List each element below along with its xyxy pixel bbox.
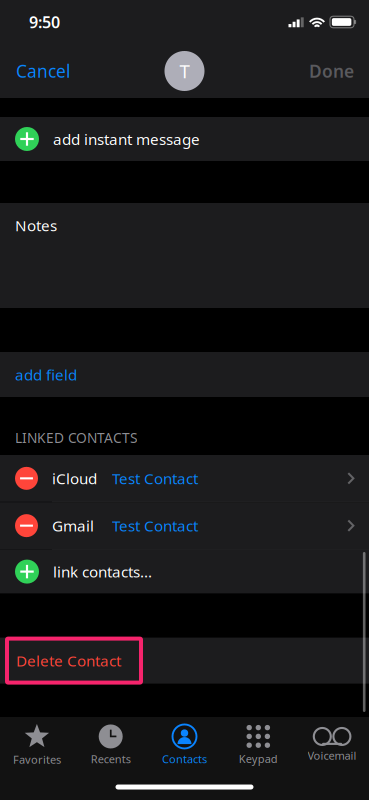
staticText: Notes <box>15 215 57 236</box>
staticText: add field <box>15 364 77 385</box>
staticText: Recents <box>91 751 131 767</box>
button[interactable]: Recents <box>74 717 148 774</box>
button[interactable]: Voicemail <box>295 717 369 774</box>
button[interactable]: add field <box>0 352 369 397</box>
staticText: add instant message <box>53 129 200 149</box>
staticText: 9:50 <box>29 11 60 33</box>
staticText: iCloud <box>52 468 97 489</box>
staticText: Favorites <box>13 752 61 767</box>
staticText: Keypad <box>239 751 278 766</box>
button[interactable]: iCloud <box>0 455 369 502</box>
staticText: Delete Contact <box>16 650 121 671</box>
staticText: Voicemail <box>308 748 357 763</box>
staticText: T <box>179 58 189 84</box>
button[interactable]: Contact photo <box>164 51 204 91</box>
staticText: Test Contact <box>112 468 198 489</box>
button[interactable]: add instant message <box>0 117 369 161</box>
staticText: link contacts... <box>53 561 152 582</box>
button[interactable]: Done <box>294 44 369 98</box>
button[interactable]: Favorites <box>0 717 74 774</box>
staticText: Gmail <box>52 515 94 536</box>
staticText: Done <box>309 59 354 83</box>
staticText: Test Contact <box>112 515 198 536</box>
button[interactable]: Contacts <box>148 717 221 774</box>
staticText: Contacts <box>162 751 207 767</box>
staticText: Cancel <box>16 59 70 83</box>
button[interactable]: Keypad <box>221 717 295 774</box>
button[interactable]: Gmail <box>0 502 369 549</box>
button[interactable]: link contacts... <box>0 550 369 594</box>
button[interactable]: Cancel <box>0 44 86 98</box>
button[interactable]: Delete Contact <box>0 638 369 684</box>
staticText: LINKED CONTACTS <box>15 428 138 447</box>
